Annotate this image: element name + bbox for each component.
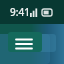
button[interactable]: Menu xyxy=(6,26,42,62)
staticText: 9:41 xyxy=(10,5,30,19)
staticText: Overview xyxy=(44,34,58,54)
